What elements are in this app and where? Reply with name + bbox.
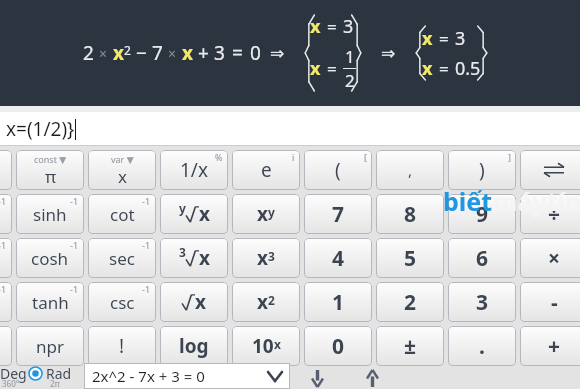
staticText: × [99, 44, 108, 63]
staticText: . [479, 332, 485, 361]
button[interactable]: log [160, 326, 228, 366]
button[interactable]: + [520, 326, 580, 366]
button[interactable]: 0 [304, 326, 372, 366]
button[interactable]: ± [376, 326, 444, 366]
staticText: = [232, 40, 243, 66]
staticText: sinh [33, 203, 67, 226]
button[interactable]: d [0, 150, 12, 190]
button[interactable]: 8 [376, 194, 444, 234]
staticText: π [45, 165, 57, 188]
staticText: 2 [345, 69, 355, 92]
button[interactable]: e [232, 150, 300, 190]
staticText: y [268, 204, 275, 220]
button[interactable]: 3 [448, 282, 516, 322]
button[interactable]: . [448, 326, 516, 366]
button[interactable]: x [232, 238, 300, 278]
button[interactable]: 5 [376, 238, 444, 278]
staticText: 7 [332, 200, 345, 229]
button[interactable]: x [232, 282, 300, 322]
button[interactable]: 9 [448, 194, 516, 234]
button[interactable]: 1 [304, 282, 372, 322]
button[interactable]: ! [88, 326, 156, 366]
button[interactable]: x [160, 282, 228, 322]
staticText: 2π [50, 378, 60, 389]
staticText: × [548, 244, 561, 273]
button[interactable]: n [0, 282, 12, 322]
other: Show history [268, 372, 282, 381]
staticText: x=(1/2)} [6, 116, 75, 142]
staticText: x [195, 289, 206, 315]
staticText: 10 [252, 333, 274, 359]
staticText: cosh [31, 247, 69, 270]
staticText: % [215, 151, 223, 163]
staticText: x [257, 201, 268, 227]
staticText: -1 [70, 283, 79, 295]
button[interactable]: npr [16, 326, 84, 366]
staticText: 3 [268, 248, 275, 264]
staticText: × [168, 44, 177, 63]
button[interactable]: Scroll down [306, 367, 328, 389]
button[interactable]: ( [304, 150, 372, 190]
staticText: 0 [332, 332, 345, 361]
staticText: log [179, 333, 209, 359]
button[interactable]: , [376, 150, 444, 190]
button[interactable]: var ▼ [88, 150, 156, 190]
button[interactable]: x [232, 194, 300, 234]
staticText: ± [404, 332, 417, 361]
button[interactable]: 6 [448, 238, 516, 278]
button[interactable]: ÷ [520, 194, 580, 234]
staticText: - [551, 288, 558, 317]
button[interactable]: n [0, 194, 12, 234]
staticText: = [439, 27, 449, 50]
button[interactable]: sinh [16, 194, 84, 234]
button[interactable]: csc [88, 282, 156, 322]
button[interactable]: tanh [16, 282, 84, 322]
button[interactable]: sec [88, 238, 156, 278]
staticText: -1 [70, 195, 79, 207]
staticText: -1 [142, 283, 151, 295]
staticText: Rad [46, 364, 72, 383]
button[interactable]: 10 [232, 326, 300, 366]
button[interactable]: 2 [376, 282, 444, 322]
button[interactable]: 2x^2 - 7x + 3 = 0 [84, 363, 290, 389]
button[interactable]: 3 [160, 238, 228, 278]
staticText: 0 [250, 40, 261, 66]
staticText: 7 [152, 40, 163, 66]
staticText: csc [110, 291, 135, 314]
staticText: -1 [0, 239, 7, 251]
button[interactable]: ) [448, 150, 516, 190]
staticText: = [439, 57, 449, 80]
staticText: 1 [332, 288, 345, 317]
staticText: x [113, 40, 124, 66]
button[interactable]: cosh [16, 238, 84, 278]
staticText: x [257, 289, 268, 315]
button[interactable]: 1/x [160, 150, 228, 190]
button[interactable]: Rad [29, 362, 72, 384]
staticText: [ [364, 151, 367, 163]
staticText: var ▼ [111, 153, 134, 165]
staticText: -1 [70, 239, 79, 251]
button[interactable]: r [0, 326, 12, 366]
button[interactable]: 7 [304, 194, 372, 234]
button[interactable]: cot [88, 194, 156, 234]
button[interactable]: Scroll up [361, 367, 383, 389]
other: Swap [544, 163, 564, 177]
staticText: 3 [455, 26, 466, 51]
staticText: máytính [493, 184, 580, 218]
button[interactable]: s [0, 238, 12, 278]
staticText: -1 [142, 195, 151, 207]
button[interactable]: Swap [520, 150, 580, 190]
staticText: − [136, 40, 147, 66]
staticText: x [422, 26, 433, 51]
button[interactable]: Deg [0, 362, 27, 384]
button[interactable]: y [160, 194, 228, 234]
staticText: 4 [332, 244, 345, 273]
staticText: x [257, 245, 268, 271]
button[interactable]: const ▼ [16, 150, 84, 190]
button[interactable]: - [520, 282, 580, 322]
button[interactable]: 4 [304, 238, 372, 278]
staticText: biết [443, 184, 493, 218]
button[interactable]: × [520, 238, 580, 278]
staticText: x [199, 245, 210, 271]
staticText: cot [110, 203, 135, 226]
